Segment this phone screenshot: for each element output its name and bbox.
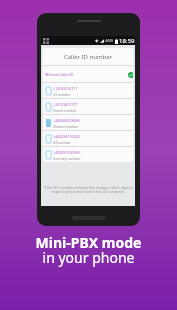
- staticText: 46%: [105, 38, 114, 44]
- button[interactable]: +33123407777: [43, 99, 133, 114]
- other: App notification: [43, 38, 49, 44]
- button[interactable]: Without Caller ID: [43, 66, 133, 82]
- staticText: in your phone: [0, 248, 177, 267]
- button[interactable]: +442034155242: [43, 131, 133, 146]
- staticText: Germany number: [53, 156, 81, 160]
- button[interactable]: +493097700995: [43, 147, 133, 162]
- staticText: US number: [53, 92, 71, 96]
- staticText: +33123407777: [53, 102, 78, 107]
- staticText: Ukraine number: [53, 124, 79, 128]
- button[interactable]: +380683478686: [43, 115, 133, 130]
- staticText: recipient's phone device before the call…: [43, 190, 133, 194]
- staticText: Caller ID number: [43, 53, 133, 61]
- button[interactable]: +12033762111: [43, 83, 133, 98]
- staticText: UK number: [53, 140, 71, 144]
- staticText: France number: [53, 108, 77, 112]
- staticText: +380683478686: [53, 118, 80, 123]
- staticText: Without Caller ID: [45, 72, 74, 77]
- staticText: +493097700995: [53, 150, 80, 155]
- staticText: 18:59: [119, 37, 135, 45]
- staticText: +442034155242: [53, 134, 80, 139]
- staticText: +12033762111: [53, 86, 78, 91]
- staticText: Mini-PBX mode: [0, 233, 177, 252]
- staticText: *Caller ID is a telephone feature that d…: [43, 186, 133, 190]
- other: Selected: [128, 72, 133, 78]
